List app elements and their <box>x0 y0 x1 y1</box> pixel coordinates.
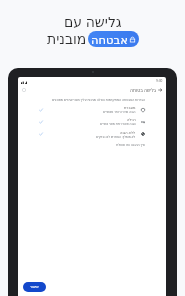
staticText: אבטחה <box>91 33 128 46</box>
staticText: הגנה סטנדרטית מפני אתרים <box>100 122 136 126</box>
staticText: מוגברת <box>124 106 136 110</box>
staticText: הגנה מהירה יותר מאתרים <box>103 110 136 114</box>
button[interactable]: ללא הגנה <box>18 128 145 140</box>
button[interactable]: רגילה <box>18 116 145 128</box>
staticText: הגדרות האבטחה המתקדמות האלה מגינות עליך … <box>18 98 145 102</box>
staticText: לא מומלץ. האתרים לא נבדקים <box>96 135 136 139</box>
other: חזרה <box>158 88 162 92</box>
button[interactable]: מוגברת <box>18 104 145 116</box>
button[interactable]: אישור <box>23 282 46 292</box>
staticText: גלישה עם <box>64 12 122 31</box>
staticText: אישור <box>30 285 39 289</box>
staticText: ללא הגנה <box>120 130 136 135</box>
staticText: מובנית <box>47 31 87 47</box>
staticText: גלישה בטוחה <box>130 87 156 93</box>
button[interactable]: אבטחה <box>88 31 139 47</box>
staticText: רגילה <box>127 118 136 122</box>
button[interactable]: גלישה בטוחה <box>130 87 162 93</box>
staticText: 9:30 <box>156 79 163 83</box>
staticText: איך ההגנה הזו פועלת <box>18 143 145 147</box>
